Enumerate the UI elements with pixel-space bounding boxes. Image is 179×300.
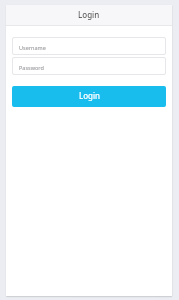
staticText: Login (78, 9, 100, 20)
button[interactable]: Login (12, 86, 166, 107)
button[interactable]: Password (12, 57, 166, 75)
button[interactable]: Username (12, 37, 166, 55)
staticText: Username (19, 44, 46, 51)
staticText: Password (19, 64, 44, 71)
staticText: Login (79, 90, 100, 101)
